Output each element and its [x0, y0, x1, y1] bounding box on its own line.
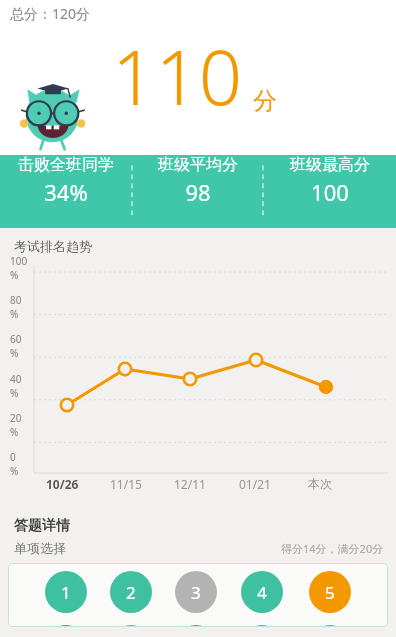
staticText: 20 — [10, 411, 22, 425]
staticText: % — [10, 386, 19, 400]
button[interactable]: 1 — [45, 571, 87, 613]
button[interactable]: 击败全班同学 — [0, 155, 132, 207]
staticText: 80 — [10, 293, 22, 307]
button[interactable] — [309, 625, 351, 627]
staticText: 3 — [191, 581, 201, 604]
staticText: 100 — [10, 254, 28, 268]
button[interactable]: 5 — [309, 571, 351, 613]
staticText: 本次 — [308, 476, 332, 491]
staticText: 0 — [10, 450, 16, 464]
staticText: % — [10, 268, 19, 282]
button[interactable]: 班级最高分 — [264, 155, 396, 207]
button[interactable] — [175, 625, 217, 627]
staticText: 考试排名趋势 — [14, 238, 92, 254]
button[interactable]: 班级平均分 — [133, 155, 263, 207]
staticText: 班级最高分 — [290, 155, 370, 175]
button[interactable]: 2 — [110, 571, 152, 613]
staticText: 答题详情 — [14, 517, 70, 535]
staticText: 110 — [112, 24, 243, 128]
staticText: 60 — [10, 332, 22, 346]
staticText: % — [10, 464, 19, 478]
staticText: 12/11 — [174, 476, 206, 492]
staticText: 98 — [185, 177, 211, 207]
staticText: 击败全班同学 — [18, 155, 114, 175]
button[interactable] — [110, 625, 152, 627]
staticText: 总分：120分 — [10, 4, 91, 23]
staticText: 34% — [44, 177, 88, 207]
staticText: 分 — [253, 86, 277, 116]
staticText: 5 — [325, 581, 335, 604]
staticText: % — [10, 346, 19, 360]
button[interactable]: 3 — [175, 571, 217, 613]
staticText: 单项选择 — [14, 540, 66, 556]
staticText: % — [10, 425, 19, 439]
staticText: 10/26 — [46, 476, 79, 492]
staticText: % — [10, 307, 19, 321]
staticText: 11/15 — [110, 476, 142, 492]
staticText: 40 — [10, 372, 22, 386]
staticText: 100 — [311, 177, 349, 207]
staticText: 01/21 — [239, 476, 271, 492]
button[interactable] — [241, 625, 283, 627]
staticText: 4 — [257, 581, 267, 604]
staticText: 1 — [61, 581, 71, 604]
staticText: 2 — [126, 581, 136, 604]
button[interactable]: 4 — [241, 571, 283, 613]
button[interactable] — [45, 625, 87, 627]
staticText: 班级平均分 — [158, 155, 238, 175]
staticText: 得分14分，满分20分 — [281, 541, 384, 556]
